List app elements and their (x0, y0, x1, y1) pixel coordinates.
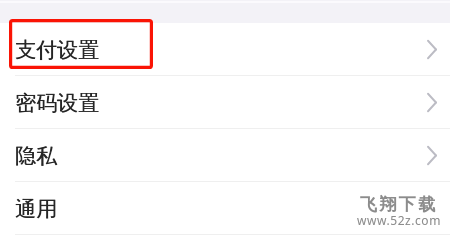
other: Open 支付设置 (427, 40, 437, 59)
staticText: 密码设置 (15, 90, 99, 116)
staticText: www.52z.com (357, 212, 441, 228)
button[interactable]: 密码设置 (0, 76, 450, 129)
staticText: 支付设置 (15, 37, 99, 63)
staticText: 飞翔下载 (360, 194, 438, 215)
staticText: 通用 (15, 196, 57, 222)
other: Open 密码设置 (427, 93, 437, 112)
button[interactable]: 隐私 (0, 129, 450, 182)
staticText: 隐私 (15, 143, 57, 169)
other: Open 隐私 (427, 146, 437, 165)
button[interactable]: 支付设置 (0, 23, 450, 76)
button[interactable]: 通用 (0, 182, 450, 235)
